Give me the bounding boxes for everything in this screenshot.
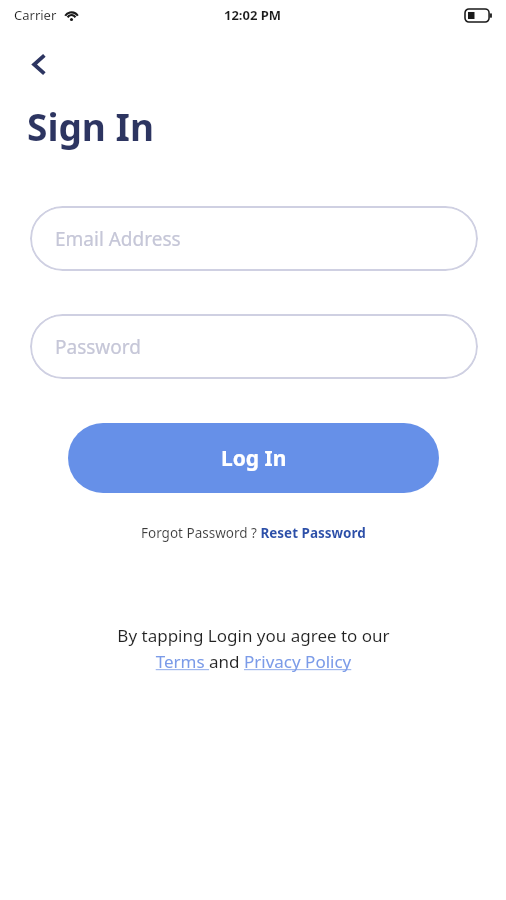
button[interactable]: Email Address [30,206,478,271]
staticText: 12:02 PM [224,6,282,24]
button[interactable]: Forgot Password ? Reset Password [141,524,366,542]
staticText: Email Address [55,226,181,252]
staticText: Sign In [27,101,154,151]
button[interactable]: Log In [68,423,439,493]
button[interactable]: By tapping Login you agree to our Terms … [0,624,506,673]
staticText: By tapping Login you agree to our Terms … [117,624,390,673]
button[interactable]: Password [30,314,478,379]
button[interactable]: Back [18,43,60,85]
staticText: Password [55,334,141,360]
staticText: Forgot Password ? Reset Password [141,524,366,542]
staticText: Log In [221,444,287,473]
staticText: Carrier [14,6,57,24]
